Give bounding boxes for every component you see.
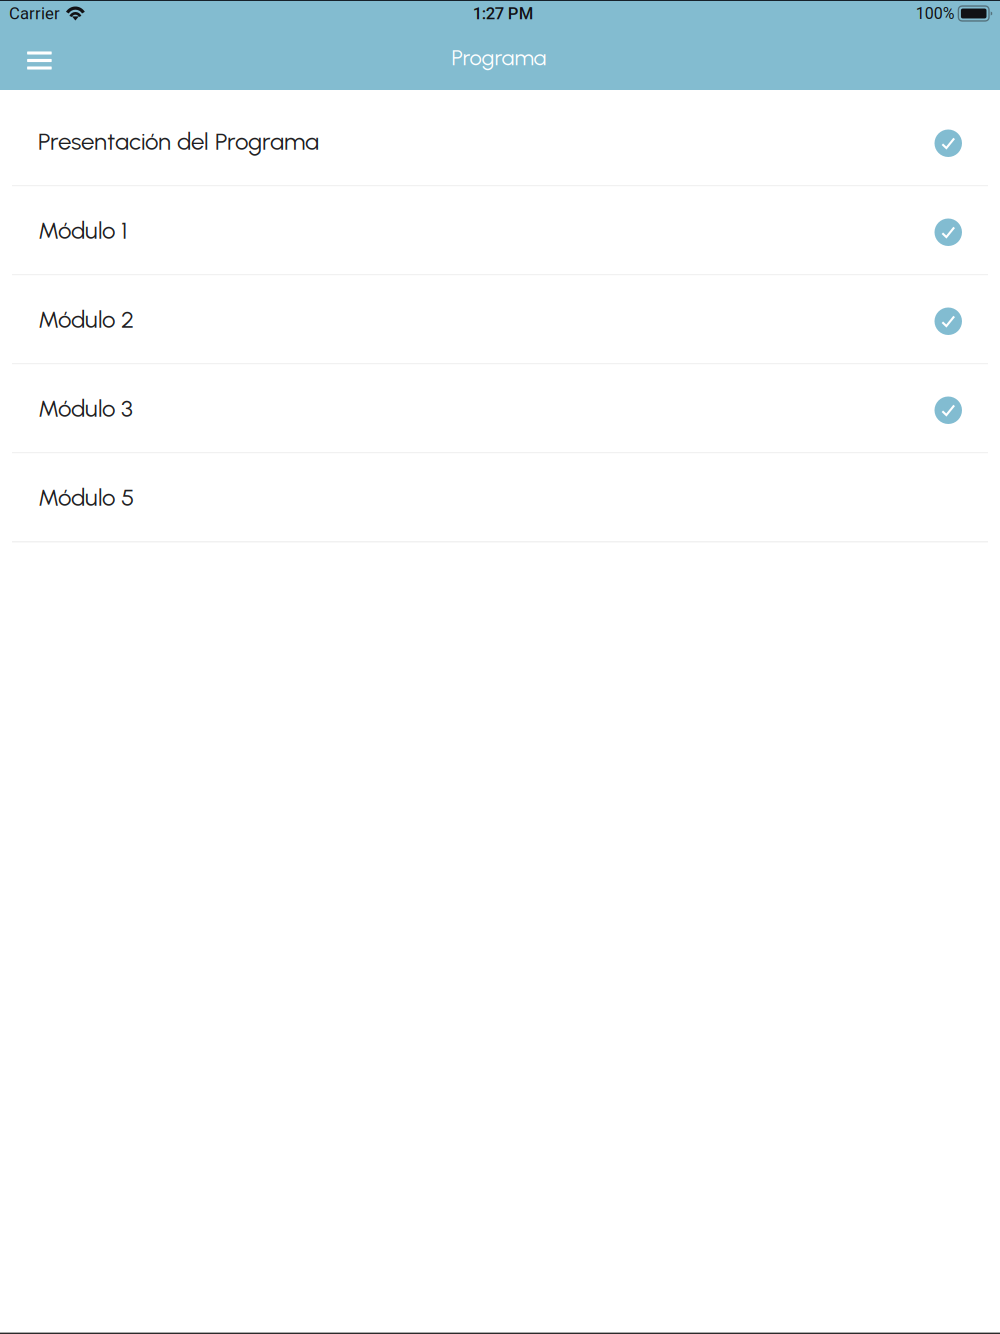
staticText: Carrier xyxy=(9,4,60,23)
button[interactable]: Módulo 2 xyxy=(0,275,1000,364)
staticText: 1:27 PM xyxy=(473,4,534,23)
staticText: Módulo 3 xyxy=(38,394,133,423)
button[interactable]: Presentación del Programa xyxy=(0,97,1000,186)
button[interactable]: Módulo 1 xyxy=(0,186,1000,275)
staticText: 100% xyxy=(916,4,955,23)
staticText: Módulo 1 xyxy=(38,216,127,245)
button[interactable]: Menu xyxy=(0,32,64,84)
staticText: Módulo 2 xyxy=(38,305,134,334)
staticText: Programa xyxy=(451,44,546,71)
button[interactable]: Módulo 3 xyxy=(0,364,1000,453)
staticText: Presentación del Programa xyxy=(38,127,319,156)
button[interactable]: Módulo 5 xyxy=(0,453,1000,542)
staticText: Módulo 5 xyxy=(38,483,134,512)
